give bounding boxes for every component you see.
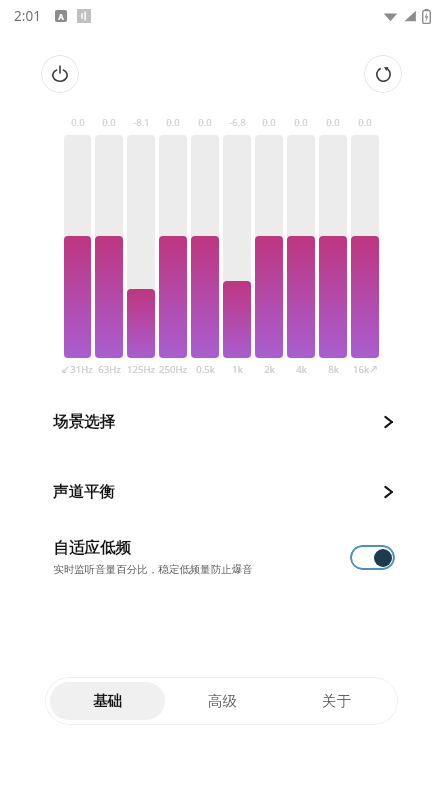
button[interactable]: 自适应低频 bbox=[0, 534, 443, 580]
staticText: 0.0 bbox=[166, 116, 180, 129]
button[interactable] bbox=[255, 135, 283, 358]
button[interactable]: 声道平衡 bbox=[0, 472, 443, 512]
staticText: 8k bbox=[328, 363, 339, 376]
staticText: 63Hz bbox=[98, 363, 121, 376]
staticText: 关于 bbox=[322, 692, 351, 710]
button[interactable] bbox=[287, 135, 315, 358]
button[interactable]: 自适应低频 开关 bbox=[350, 545, 395, 570]
staticText: 高级 bbox=[208, 692, 237, 710]
staticText: 0.0 bbox=[102, 116, 116, 129]
button[interactable]: Power bbox=[41, 55, 79, 93]
staticText: 2:01 bbox=[14, 7, 41, 25]
staticText: 场景选择 bbox=[53, 412, 115, 432]
button[interactable] bbox=[223, 135, 251, 358]
staticText: 0.0 bbox=[71, 116, 85, 129]
staticText: 自适应低频 bbox=[53, 538, 131, 558]
button[interactable] bbox=[191, 135, 219, 358]
staticText: 声道平衡 bbox=[53, 482, 115, 502]
staticText: 0.0 bbox=[358, 116, 372, 129]
staticText: -8.1 bbox=[133, 116, 150, 129]
staticText: 16k bbox=[353, 363, 369, 376]
staticText: 125Hz bbox=[127, 363, 155, 376]
staticText: 0.5k bbox=[196, 363, 215, 376]
staticText: 31Hz bbox=[70, 363, 93, 376]
button[interactable] bbox=[159, 135, 187, 358]
button[interactable] bbox=[319, 135, 347, 358]
button[interactable] bbox=[127, 135, 155, 358]
button[interactable]: 高级 bbox=[165, 682, 279, 720]
button[interactable] bbox=[95, 135, 123, 358]
staticText: -6.8 bbox=[229, 116, 246, 129]
staticText: 0.0 bbox=[326, 116, 340, 129]
staticText: 1k bbox=[232, 363, 243, 376]
button[interactable]: 关于 bbox=[279, 682, 393, 720]
button[interactable] bbox=[351, 135, 379, 358]
staticText: 0.0 bbox=[294, 116, 308, 129]
staticText: 0.0 bbox=[262, 116, 276, 129]
staticText: 250Hz bbox=[159, 363, 187, 376]
button[interactable]: 场景选择 bbox=[0, 402, 443, 442]
button[interactable]: Reset bbox=[364, 55, 402, 93]
staticText: 0.0 bbox=[198, 116, 212, 129]
staticText: 2k bbox=[264, 363, 275, 376]
staticText: 实时监听音量百分比，稳定低频量防止爆音 bbox=[53, 563, 253, 576]
button[interactable] bbox=[64, 135, 91, 358]
staticText: 4k bbox=[296, 363, 307, 376]
staticText: A bbox=[58, 11, 64, 22]
staticText: 基础 bbox=[93, 692, 122, 710]
button[interactable]: 基础 bbox=[50, 682, 165, 720]
